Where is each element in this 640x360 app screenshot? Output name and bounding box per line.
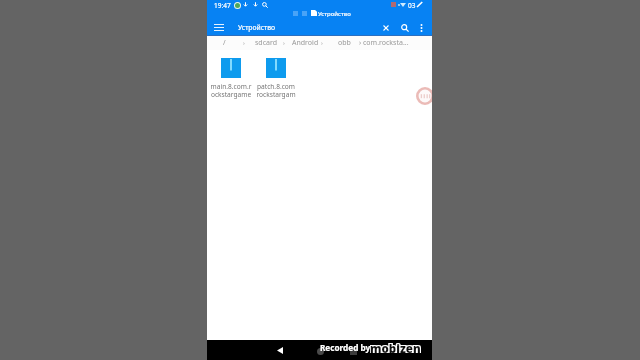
button[interactable]: More options	[414, 20, 428, 35]
staticText: mobizen	[370, 341, 421, 353]
button[interactable]: Android	[288, 36, 323, 50]
staticText: ›	[283, 39, 285, 47]
staticText: sdcard	[255, 38, 278, 48]
button[interactable]: Open navigation drawer	[209, 20, 229, 35]
button[interactable]: patch.8.com rockstargam	[253, 58, 298, 99]
button[interactable]: sdcard	[251, 36, 282, 50]
staticText: 19:47	[214, 1, 231, 10]
button[interactable]: /	[219, 36, 230, 50]
button[interactable]: Search	[397, 20, 413, 35]
staticText: /	[223, 38, 226, 48]
button[interactable]: obb	[334, 36, 355, 50]
staticText: › com.rocksta...	[359, 38, 409, 48]
staticText: 03	[408, 1, 416, 10]
staticText: main.8.com.r ockstargame	[210, 82, 252, 99]
staticText: Устройство	[238, 23, 276, 32]
button[interactable]: main.8.com.r ockstargame	[208, 58, 253, 99]
button[interactable]: Close	[378, 20, 394, 35]
button[interactable]: › com.rocksta...	[355, 36, 413, 50]
staticText: patch.8.com rockstargam	[255, 82, 297, 99]
button[interactable]: Back	[271, 342, 289, 358]
staticText: mobizen	[370, 341, 421, 353]
staticText: ›	[321, 39, 323, 47]
staticText: Устройство	[318, 10, 351, 18]
staticText: Recorded by	[320, 342, 371, 353]
staticText: ›	[243, 39, 245, 47]
staticText: Android	[292, 38, 319, 48]
staticText: obb	[338, 38, 351, 48]
